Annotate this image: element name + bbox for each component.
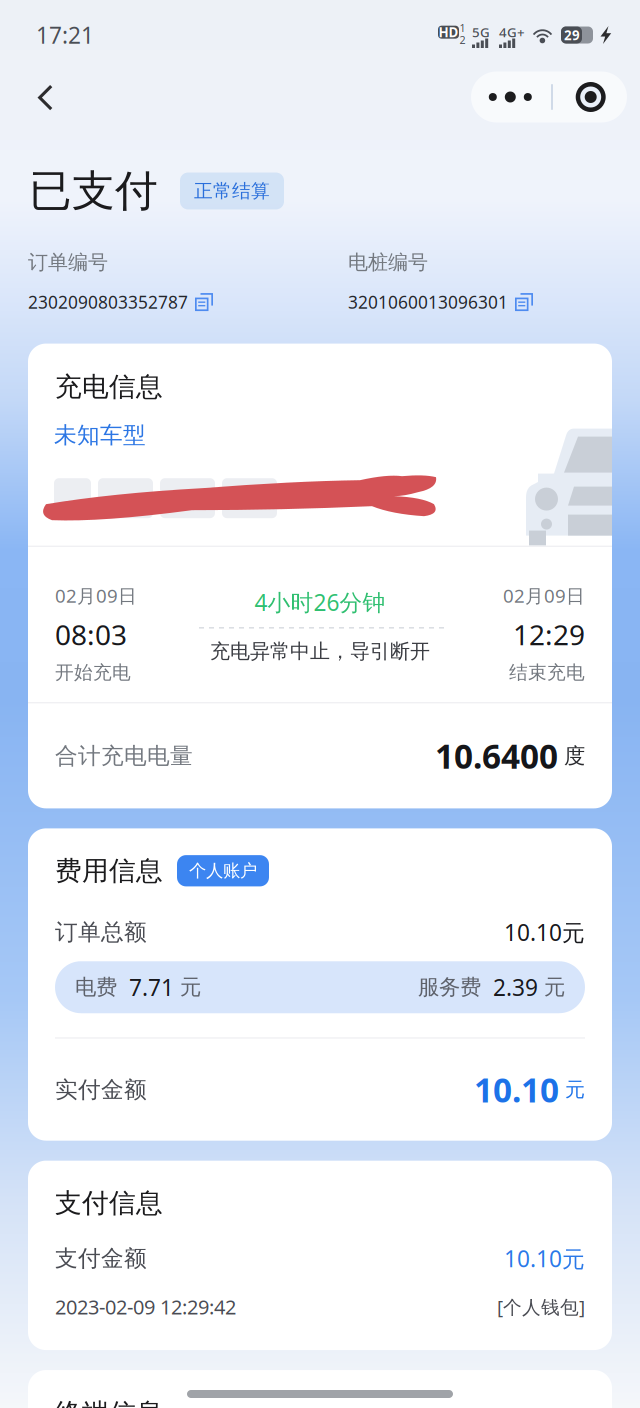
button[interactable]: 2302090803352787: [28, 275, 213, 314]
staticText: 服务费: [418, 974, 481, 1000]
staticText: 充电信息: [55, 371, 163, 403]
staticText: [个人钱包]: [497, 1294, 585, 1319]
staticText: 12:29: [513, 616, 585, 653]
staticText: 订单编号: [28, 250, 108, 275]
staticText: 2302090803352787: [28, 291, 188, 314]
staticText: 订单总额: [55, 918, 147, 946]
staticText: 08:03: [55, 616, 127, 653]
staticText: 5G: [472, 23, 490, 41]
staticText: 10.6400: [435, 734, 558, 778]
staticText: 正常结算: [194, 179, 270, 202]
staticText: 结束充电: [509, 661, 585, 684]
staticText: 元: [544, 974, 565, 1000]
staticText: 3201060013096301: [348, 291, 508, 314]
staticText: HD: [438, 23, 458, 41]
staticText: 4G+: [499, 23, 525, 41]
staticText: 2023-02-09 12:29:42: [55, 1293, 236, 1320]
button[interactable]: 3201060013096301: [348, 275, 533, 314]
staticText: 支付信息: [55, 1187, 163, 1219]
staticText: 度: [558, 743, 585, 769]
button[interactable]: Back: [18, 71, 72, 125]
staticText: 终端信息: [55, 1397, 163, 1408]
staticText: 实付金额: [55, 1076, 147, 1103]
staticText: 17:21: [36, 20, 94, 50]
staticText: 10.10: [474, 1067, 559, 1112]
staticText: 支付金额: [55, 1244, 147, 1272]
staticText: 费用信息: [55, 854, 163, 887]
staticText: 10.10元: [504, 917, 585, 947]
staticText: 4小时26分钟: [254, 587, 385, 617]
staticText: 2.39: [481, 972, 544, 1002]
staticText: 合计充电电量: [55, 742, 193, 770]
staticText: 元: [180, 974, 201, 1000]
staticText: 电费: [75, 974, 117, 1000]
staticText: 充电异常中止，导引断开: [210, 639, 430, 664]
staticText: 2: [459, 33, 465, 47]
staticText: 开始充电: [55, 661, 131, 684]
staticText: 02月09日: [503, 583, 585, 608]
staticText: 已支付: [29, 165, 158, 217]
button[interactable]: More: [469, 71, 551, 123]
staticText: 29: [564, 26, 580, 44]
staticText: 未知车型: [54, 421, 146, 449]
staticText: 电桩编号: [348, 250, 428, 275]
staticText: 1: [459, 21, 465, 35]
staticText: 个人账户: [189, 860, 257, 881]
staticText: 10.10元: [504, 1243, 585, 1273]
staticText: 02月09日: [55, 583, 137, 608]
staticText: 元: [559, 1077, 585, 1102]
button[interactable]: Close: [553, 71, 629, 123]
staticText: 7.71: [117, 972, 180, 1002]
